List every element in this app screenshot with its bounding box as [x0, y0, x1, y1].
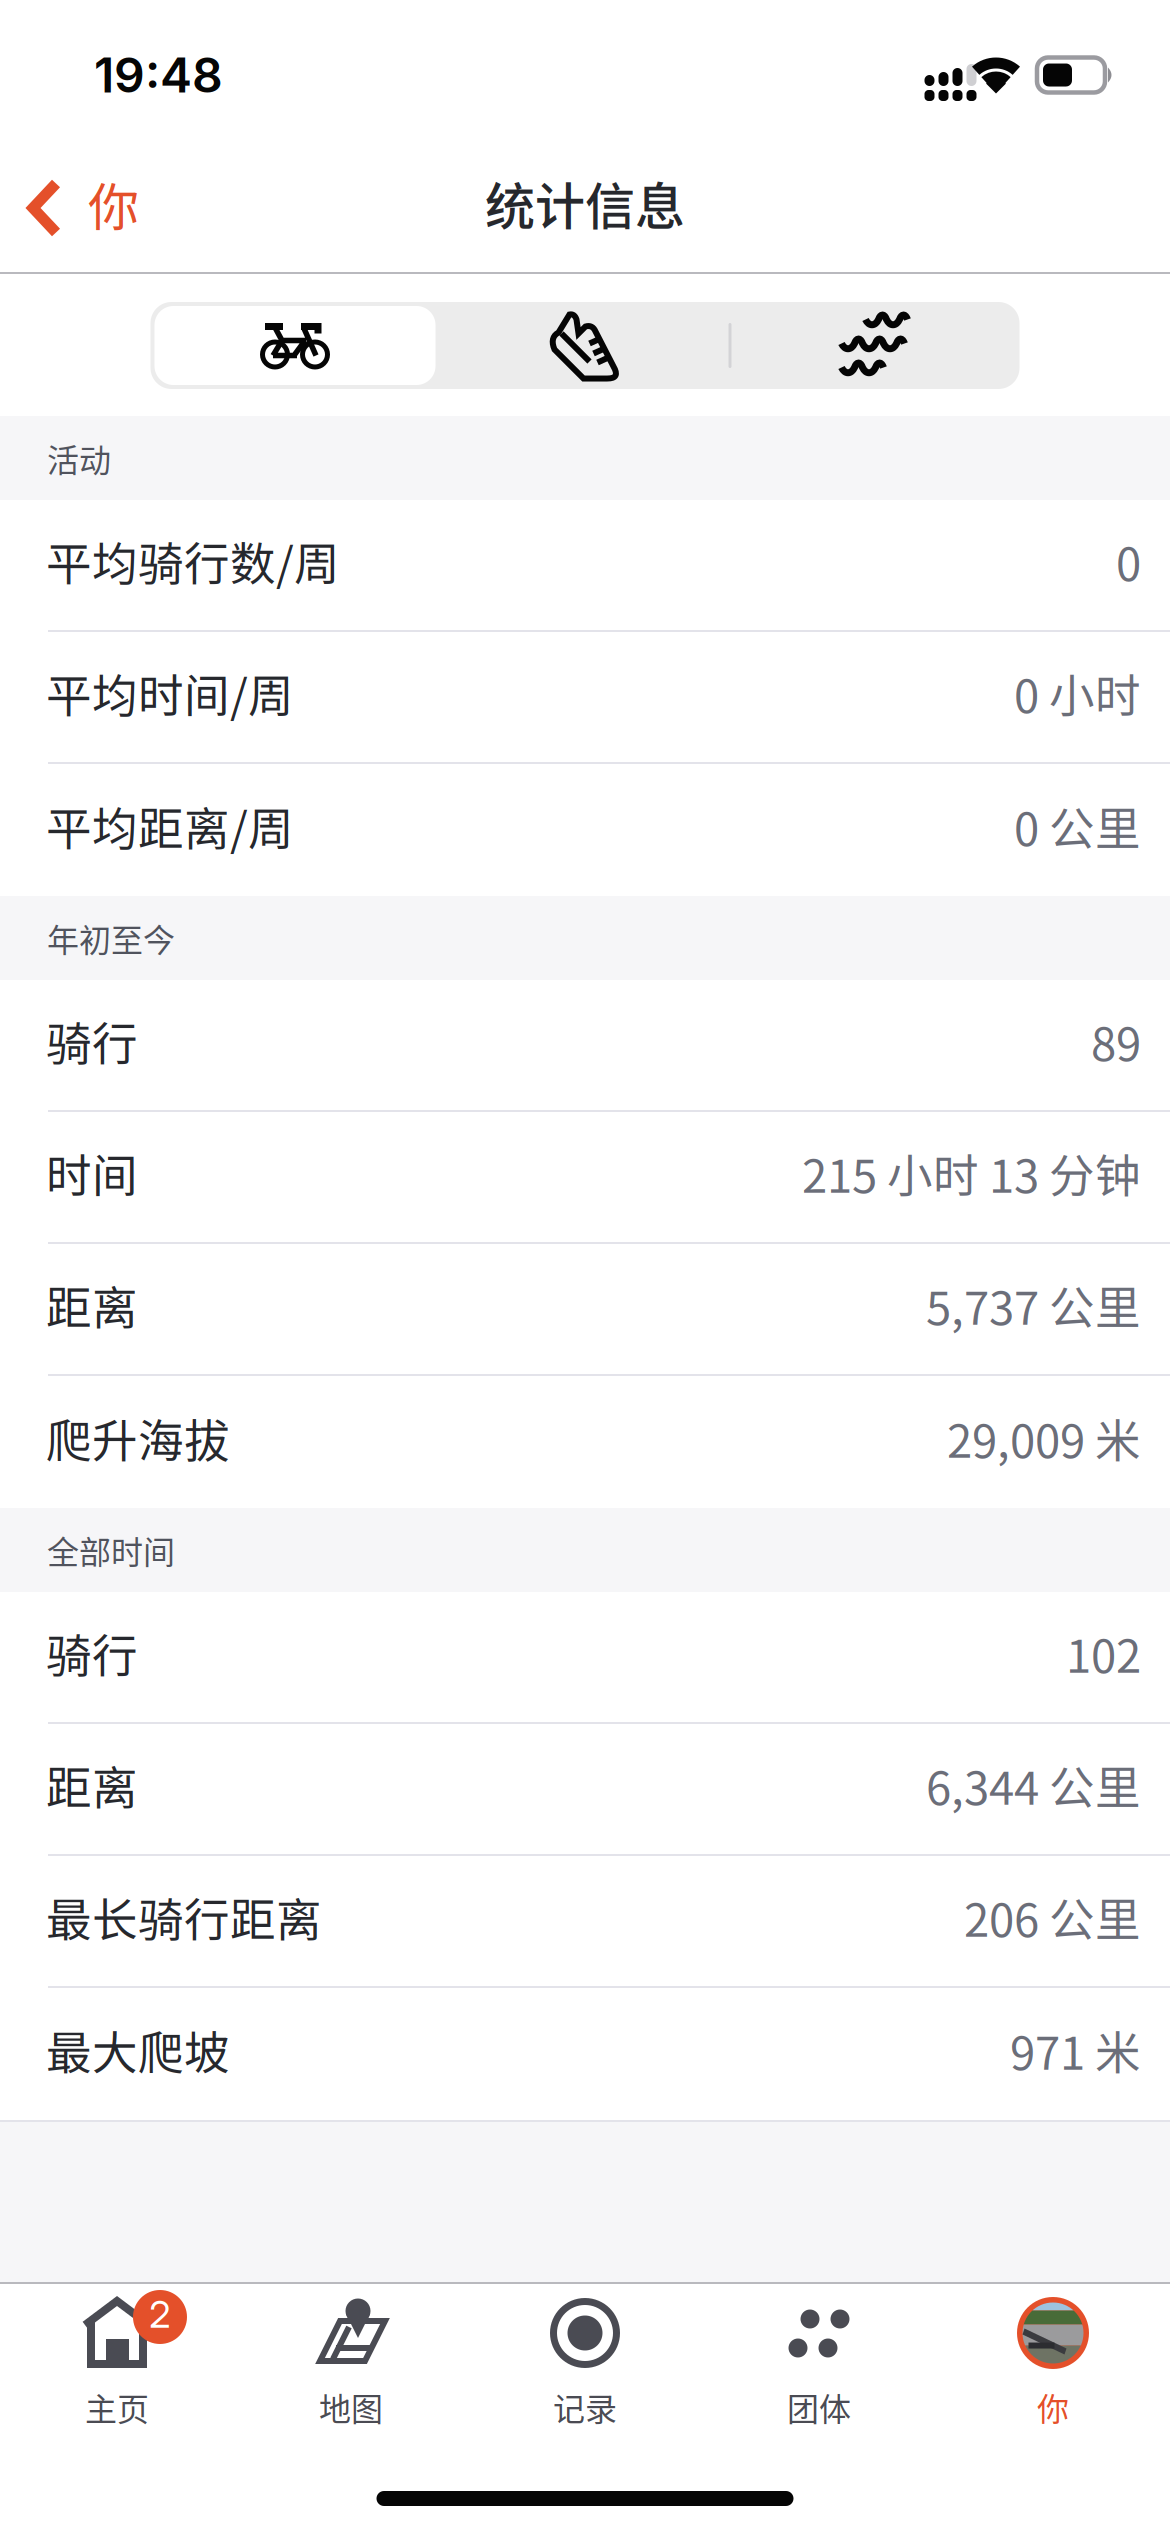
staticText: 29,009 米	[947, 1405, 1141, 1471]
staticText: 记录	[553, 2384, 617, 2430]
button[interactable]: 你	[0, 150, 163, 272]
staticText: 你	[1037, 2384, 1069, 2430]
staticText: 2	[149, 2291, 171, 2337]
button[interactable]: 地图	[234, 2284, 468, 2444]
staticText: 年初至今	[47, 915, 175, 961]
staticText: 全部时间	[47, 1527, 175, 1573]
staticText: 骑行	[46, 1008, 138, 1074]
button[interactable]: 2	[0, 2284, 234, 2444]
staticText: 0	[1116, 528, 1141, 594]
button[interactable]: 记录	[468, 2284, 702, 2444]
staticText: 爬升海拔	[46, 1405, 230, 1471]
staticText: 971 米	[1010, 2017, 1141, 2083]
staticText: 骑行	[46, 1620, 138, 1686]
button[interactable]: 你	[936, 2284, 1170, 2444]
staticText: 活动	[47, 435, 111, 481]
staticText: 主页	[85, 2384, 149, 2430]
staticText: 102	[1066, 1620, 1141, 1686]
staticText: 0 小时	[1014, 660, 1141, 726]
staticText: 距离	[46, 1752, 138, 1818]
staticText: 平均骑行数/周	[46, 528, 340, 594]
button[interactable]: 团体	[702, 2284, 936, 2444]
staticText: 0 公里	[1014, 793, 1141, 859]
staticText: 你	[88, 167, 139, 241]
staticText: 距离	[46, 1272, 138, 1338]
button[interactable]: 游泳	[729, 302, 1019, 389]
staticText: 89	[1091, 1008, 1141, 1074]
staticText: 最大爬坡	[46, 2017, 230, 2083]
staticText: 215 小时 13 分钟	[802, 1140, 1141, 1206]
staticText: 平均距离/周	[46, 793, 294, 859]
staticText: 19:48	[94, 46, 223, 104]
staticText: 时间	[46, 1140, 138, 1206]
staticText: 206 公里	[964, 1884, 1141, 1950]
staticText: 团体	[787, 2384, 851, 2430]
staticText: 地图	[319, 2384, 383, 2430]
staticText: 最长骑行距离	[46, 1884, 322, 1950]
staticText: 平均时间/周	[46, 660, 294, 726]
staticText: 统计信息	[485, 167, 685, 239]
button[interactable]: 跑步	[439, 302, 729, 389]
button[interactable]: 骑行	[150, 302, 439, 389]
staticText: 6,344 公里	[926, 1752, 1141, 1818]
staticText: 5,737 公里	[926, 1272, 1141, 1338]
